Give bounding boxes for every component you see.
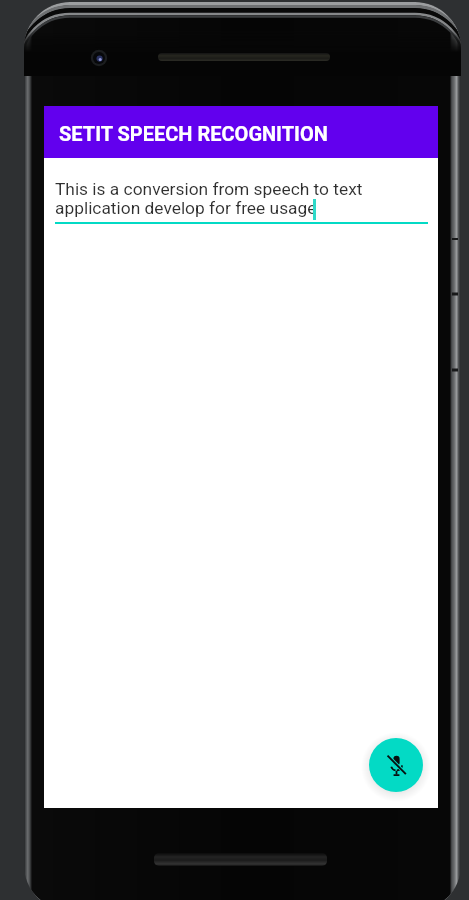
- staticText: This is a conversion from speech to text…: [55, 179, 428, 219]
- staticText: SETIT SPEECH RECOGNITION: [59, 122, 328, 145]
- button[interactable]: Stop listening: [369, 738, 423, 792]
- button[interactable]: SETIT SPEECH RECOGNITION: [44, 106, 438, 158]
